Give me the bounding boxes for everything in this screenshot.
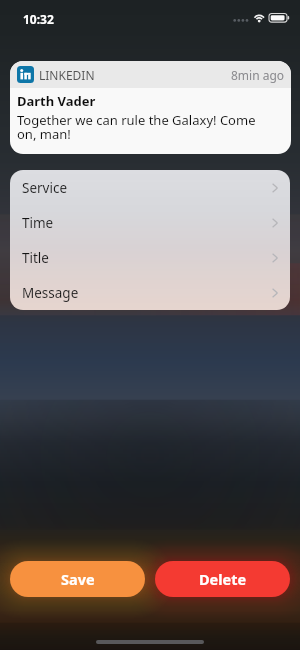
staticText: Delete [199,569,247,589]
button[interactable]: LINKEDIN [10,61,291,154]
button[interactable]: Service [10,170,290,205]
staticText: LINKEDIN [39,67,95,83]
staticText: Together we can rule the Galaxy! Come on… [17,111,267,143]
staticText: Service [22,179,68,197]
staticText: Title [22,249,49,267]
button[interactable]: Message [10,275,290,310]
staticText: Save [61,569,95,589]
button[interactable]: Delete [155,561,290,597]
button[interactable]: Save [10,561,145,597]
staticText: 10:32 [23,11,54,27]
staticText: Darth Vader [17,92,96,110]
staticText: Time [22,214,54,232]
staticText: Message [22,284,79,302]
staticText: 8min ago [231,67,285,83]
button[interactable]: Title [10,240,290,275]
button[interactable]: Time [10,205,290,240]
